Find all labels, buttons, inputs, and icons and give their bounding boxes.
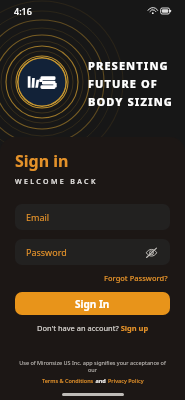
staticText: Forgot Password? (104, 273, 168, 283)
button[interactable]: Show password (143, 244, 159, 260)
staticText: PRESENTING (88, 58, 169, 73)
staticText: Email (26, 211, 50, 223)
button[interactable]: Terms & Conditions (42, 377, 94, 384)
staticText: Terms & Conditions (42, 377, 94, 384)
button[interactable]: Privacy Policy (108, 377, 144, 384)
staticText: Password (26, 246, 67, 258)
button[interactable]: Sign In (15, 292, 170, 315)
staticText: WELCOME BACK (15, 177, 98, 187)
staticText: 4:16 (14, 5, 32, 17)
staticText: and (94, 377, 108, 384)
staticText: Privacy Policy (108, 377, 144, 384)
staticText: FUTURE OF (88, 76, 158, 91)
button[interactable]: Email (15, 204, 170, 230)
button[interactable]: Forgot Password? (102, 271, 170, 285)
staticText: BODY SIZING (88, 94, 173, 109)
staticText: Sign In (75, 297, 110, 311)
button[interactable]: Password (15, 239, 170, 265)
staticText: Don't have an account? Sign up (37, 323, 149, 333)
staticText: Sign in (15, 150, 69, 172)
staticText: Use of Mironsize US Inc. app signifies y… (15, 359, 170, 373)
button[interactable]: Don't have an account? Sign up (15, 323, 170, 333)
